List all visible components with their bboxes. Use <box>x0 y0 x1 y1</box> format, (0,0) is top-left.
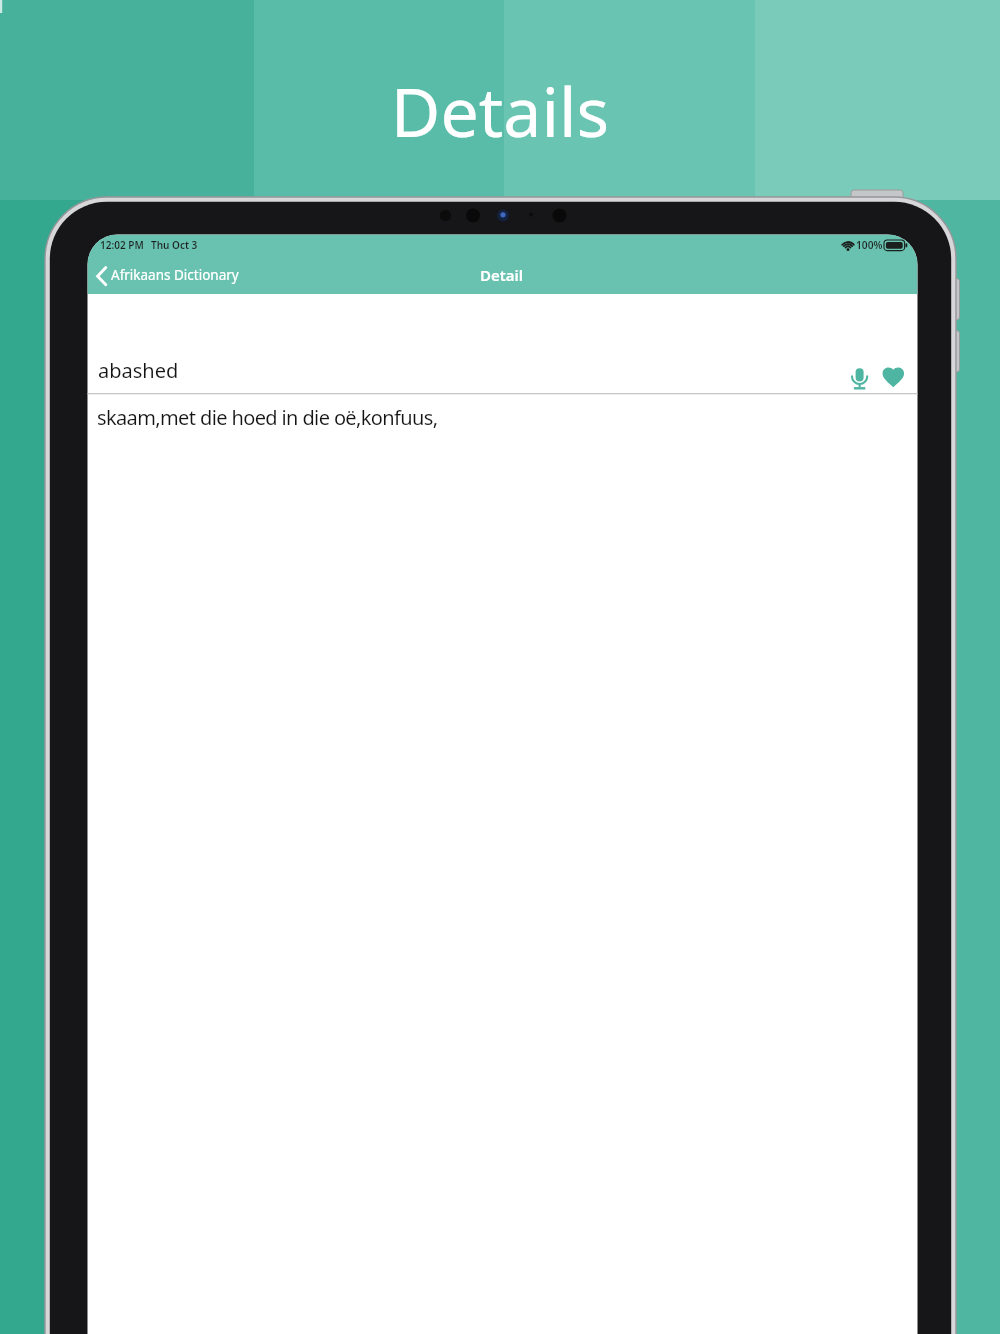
staticText: Details <box>0 64 1000 157</box>
button[interactable] <box>92 258 242 294</box>
button[interactable] <box>877 362 909 392</box>
staticText: Afrikaans Dictionary <box>111 266 239 284</box>
staticText: Thu Oct 3 <box>151 238 198 252</box>
staticText: Detail <box>480 265 524 285</box>
staticText: 100% <box>856 238 883 252</box>
staticText: abashed <box>98 357 179 384</box>
button[interactable] <box>845 361 875 394</box>
staticText: skaam,met die hoed in die oë,konfuus, <box>97 404 438 431</box>
staticText: 12:02 PM <box>100 238 144 252</box>
button[interactable] <box>442 260 562 294</box>
